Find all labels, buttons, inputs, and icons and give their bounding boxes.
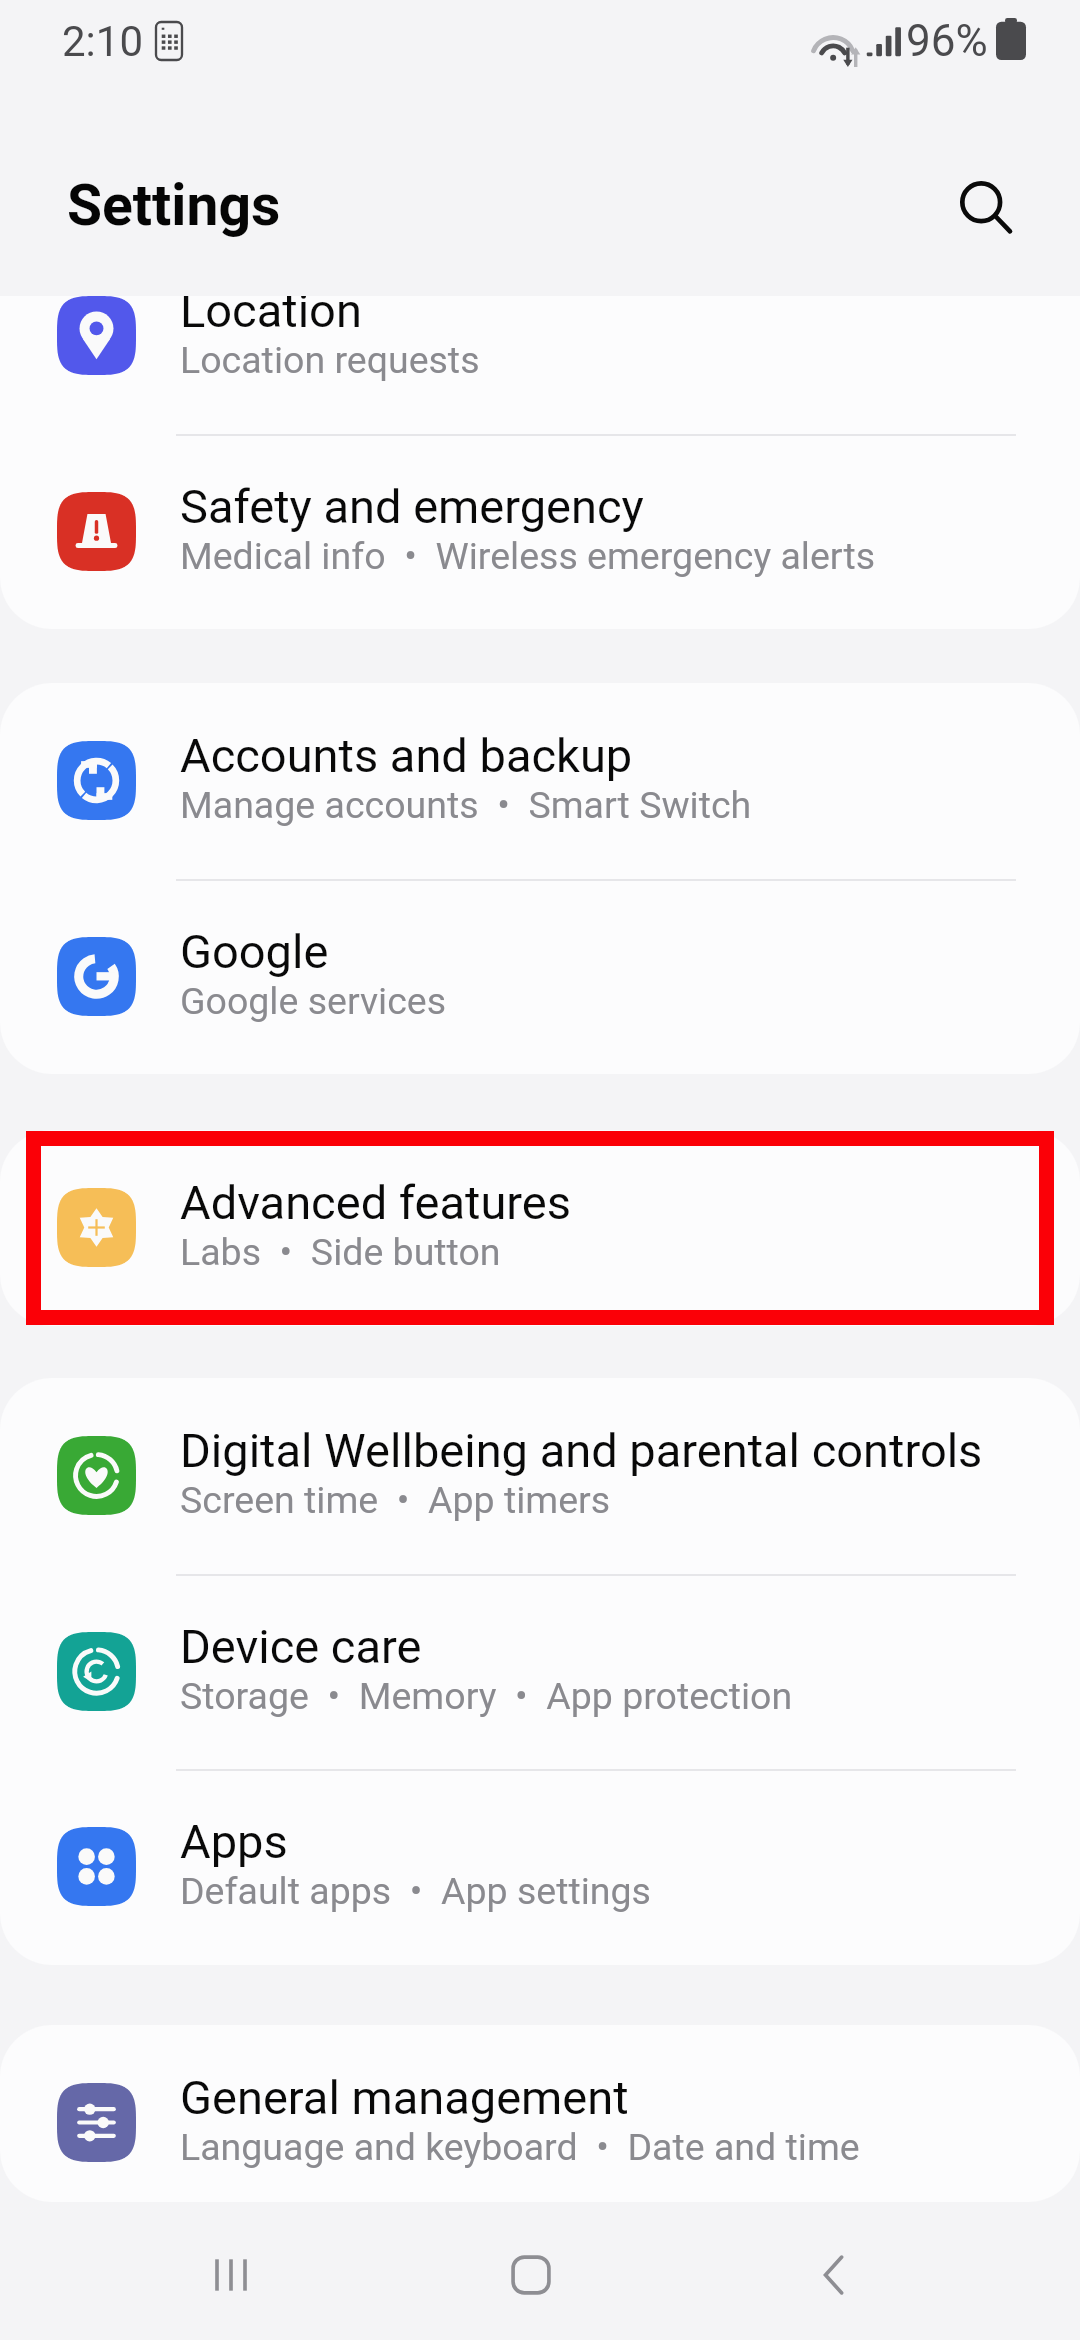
staticText: 96%	[906, 15, 988, 67]
staticText: Google services	[180, 979, 447, 1023]
staticText: Accounts and backup	[180, 728, 633, 783]
staticText: Medical info • Wireless emergency alerts	[180, 534, 876, 578]
button[interactable]: Advanced features	[0, 1130, 1080, 1326]
button[interactable]: Home	[456, 2210, 606, 2340]
button[interactable]: Recents	[156, 2210, 306, 2340]
staticText: Location	[180, 296, 362, 338]
staticText: Digital Wellbeing and parental controls	[180, 1423, 983, 1478]
staticText: Google	[180, 924, 329, 979]
staticText: General management	[180, 2070, 629, 2125]
staticText: Screen time • App timers	[180, 1478, 611, 1522]
button[interactable]: Accounts and backup	[0, 683, 1080, 879]
staticText: 2:10	[62, 17, 143, 66]
button[interactable]: Search	[940, 162, 1032, 254]
button[interactable]: Device care	[0, 1574, 1080, 1770]
button[interactable]: Location	[0, 296, 1080, 434]
button[interactable]: Back	[760, 2210, 910, 2340]
button[interactable]: Digital Wellbeing and parental controls	[0, 1378, 1080, 1574]
staticText: Language and keyboard • Date and time	[180, 2125, 860, 2169]
staticText: Apps	[180, 1814, 288, 1869]
staticText: Advanced features	[180, 1175, 572, 1230]
staticText: Manage accounts • Smart Switch	[180, 783, 752, 827]
staticText: Safety and emergency	[180, 479, 644, 534]
staticText: Storage • Memory • App protection	[180, 1674, 793, 1718]
staticText: Labs • Side button	[180, 1230, 501, 1274]
staticText: Device care	[180, 1619, 422, 1674]
button[interactable]: Safety and emergency	[0, 434, 1080, 629]
button[interactable]: General management	[0, 2025, 1080, 2202]
button[interactable]: Google	[0, 879, 1080, 1074]
staticText: Default apps • App settings	[180, 1869, 651, 1913]
button[interactable]: Apps	[0, 1769, 1080, 1965]
staticText: Location requests	[180, 338, 480, 382]
staticText: Settings	[67, 172, 281, 239]
